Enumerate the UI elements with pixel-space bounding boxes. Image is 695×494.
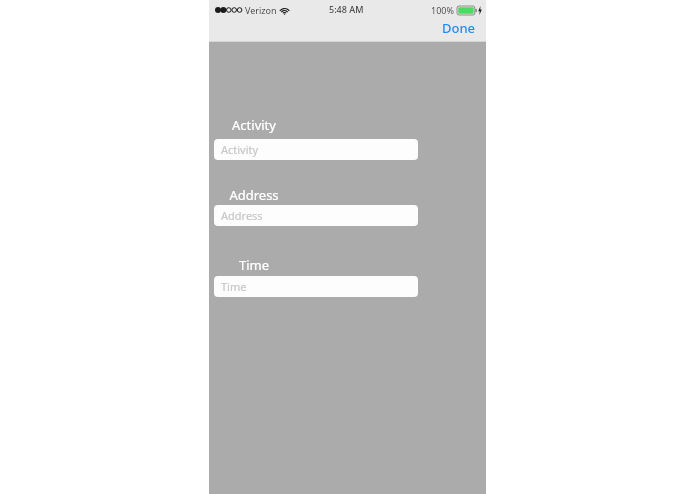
staticText: Done [442,19,476,37]
staticText: Address [221,208,263,223]
staticText: 100% [431,4,454,16]
staticText: 5:48 AM [329,3,364,15]
staticText: Address [214,186,294,204]
staticText: Activity [221,142,259,157]
button[interactable]: Activity [214,139,418,160]
button[interactable]: Time [214,276,418,297]
button[interactable]: Address [214,205,418,226]
staticText: Time [221,279,247,294]
staticText: Verizon [245,4,277,16]
staticText: Activity [214,116,294,134]
staticText: Time [214,256,294,274]
button[interactable]: Done [432,17,486,39]
